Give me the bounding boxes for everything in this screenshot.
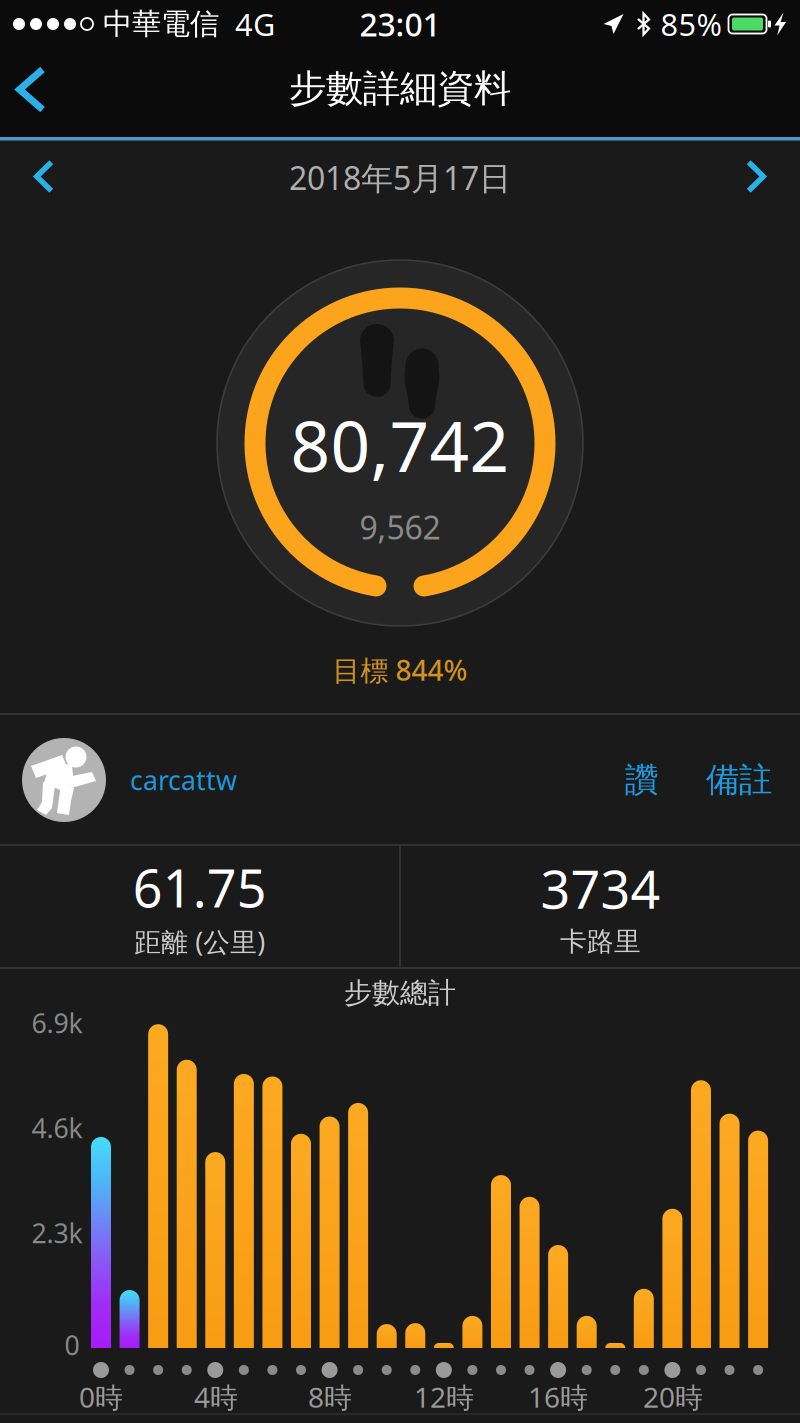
button[interactable]: 讚	[603, 715, 680, 845]
staticText: 8時	[308, 1378, 352, 1416]
button[interactable]: Next day	[724, 140, 800, 222]
staticText: 目標 844%	[332, 651, 467, 689]
staticText: 中華電信	[103, 6, 219, 42]
staticText: 4G	[235, 4, 275, 44]
button[interactable]: Previous day	[0, 140, 76, 222]
staticText: 9,562	[359, 506, 440, 548]
staticText: 0時	[79, 1378, 123, 1416]
staticText: 步數總計	[344, 976, 456, 1010]
staticText: 12時	[414, 1378, 474, 1416]
staticText: 步數詳細資料	[289, 66, 511, 111]
staticText: 3734	[540, 854, 660, 923]
staticText: 0	[64, 1327, 79, 1363]
staticText: 距離 (公里)	[134, 924, 265, 959]
staticText: 讚	[625, 759, 658, 800]
staticText: 20時	[643, 1378, 703, 1416]
staticText: 備註	[706, 759, 772, 800]
button[interactable]: 備註	[680, 715, 800, 845]
staticText: 6.9k	[31, 1005, 82, 1041]
staticText: 80,742	[290, 399, 509, 491]
staticText: 4.6k	[31, 1110, 82, 1146]
staticText: 4時	[194, 1378, 238, 1416]
staticText: 61.75	[133, 853, 267, 922]
staticText: 2018年5月17日	[289, 156, 511, 199]
staticText: 23:01	[359, 3, 440, 45]
staticText: carcattw	[130, 762, 237, 798]
staticText: 卡路里	[560, 925, 641, 958]
staticText: 85%	[660, 4, 721, 44]
staticText: 2.3k	[31, 1215, 82, 1251]
button[interactable]: Back	[0, 48, 70, 137]
staticText: 16時	[528, 1378, 588, 1416]
